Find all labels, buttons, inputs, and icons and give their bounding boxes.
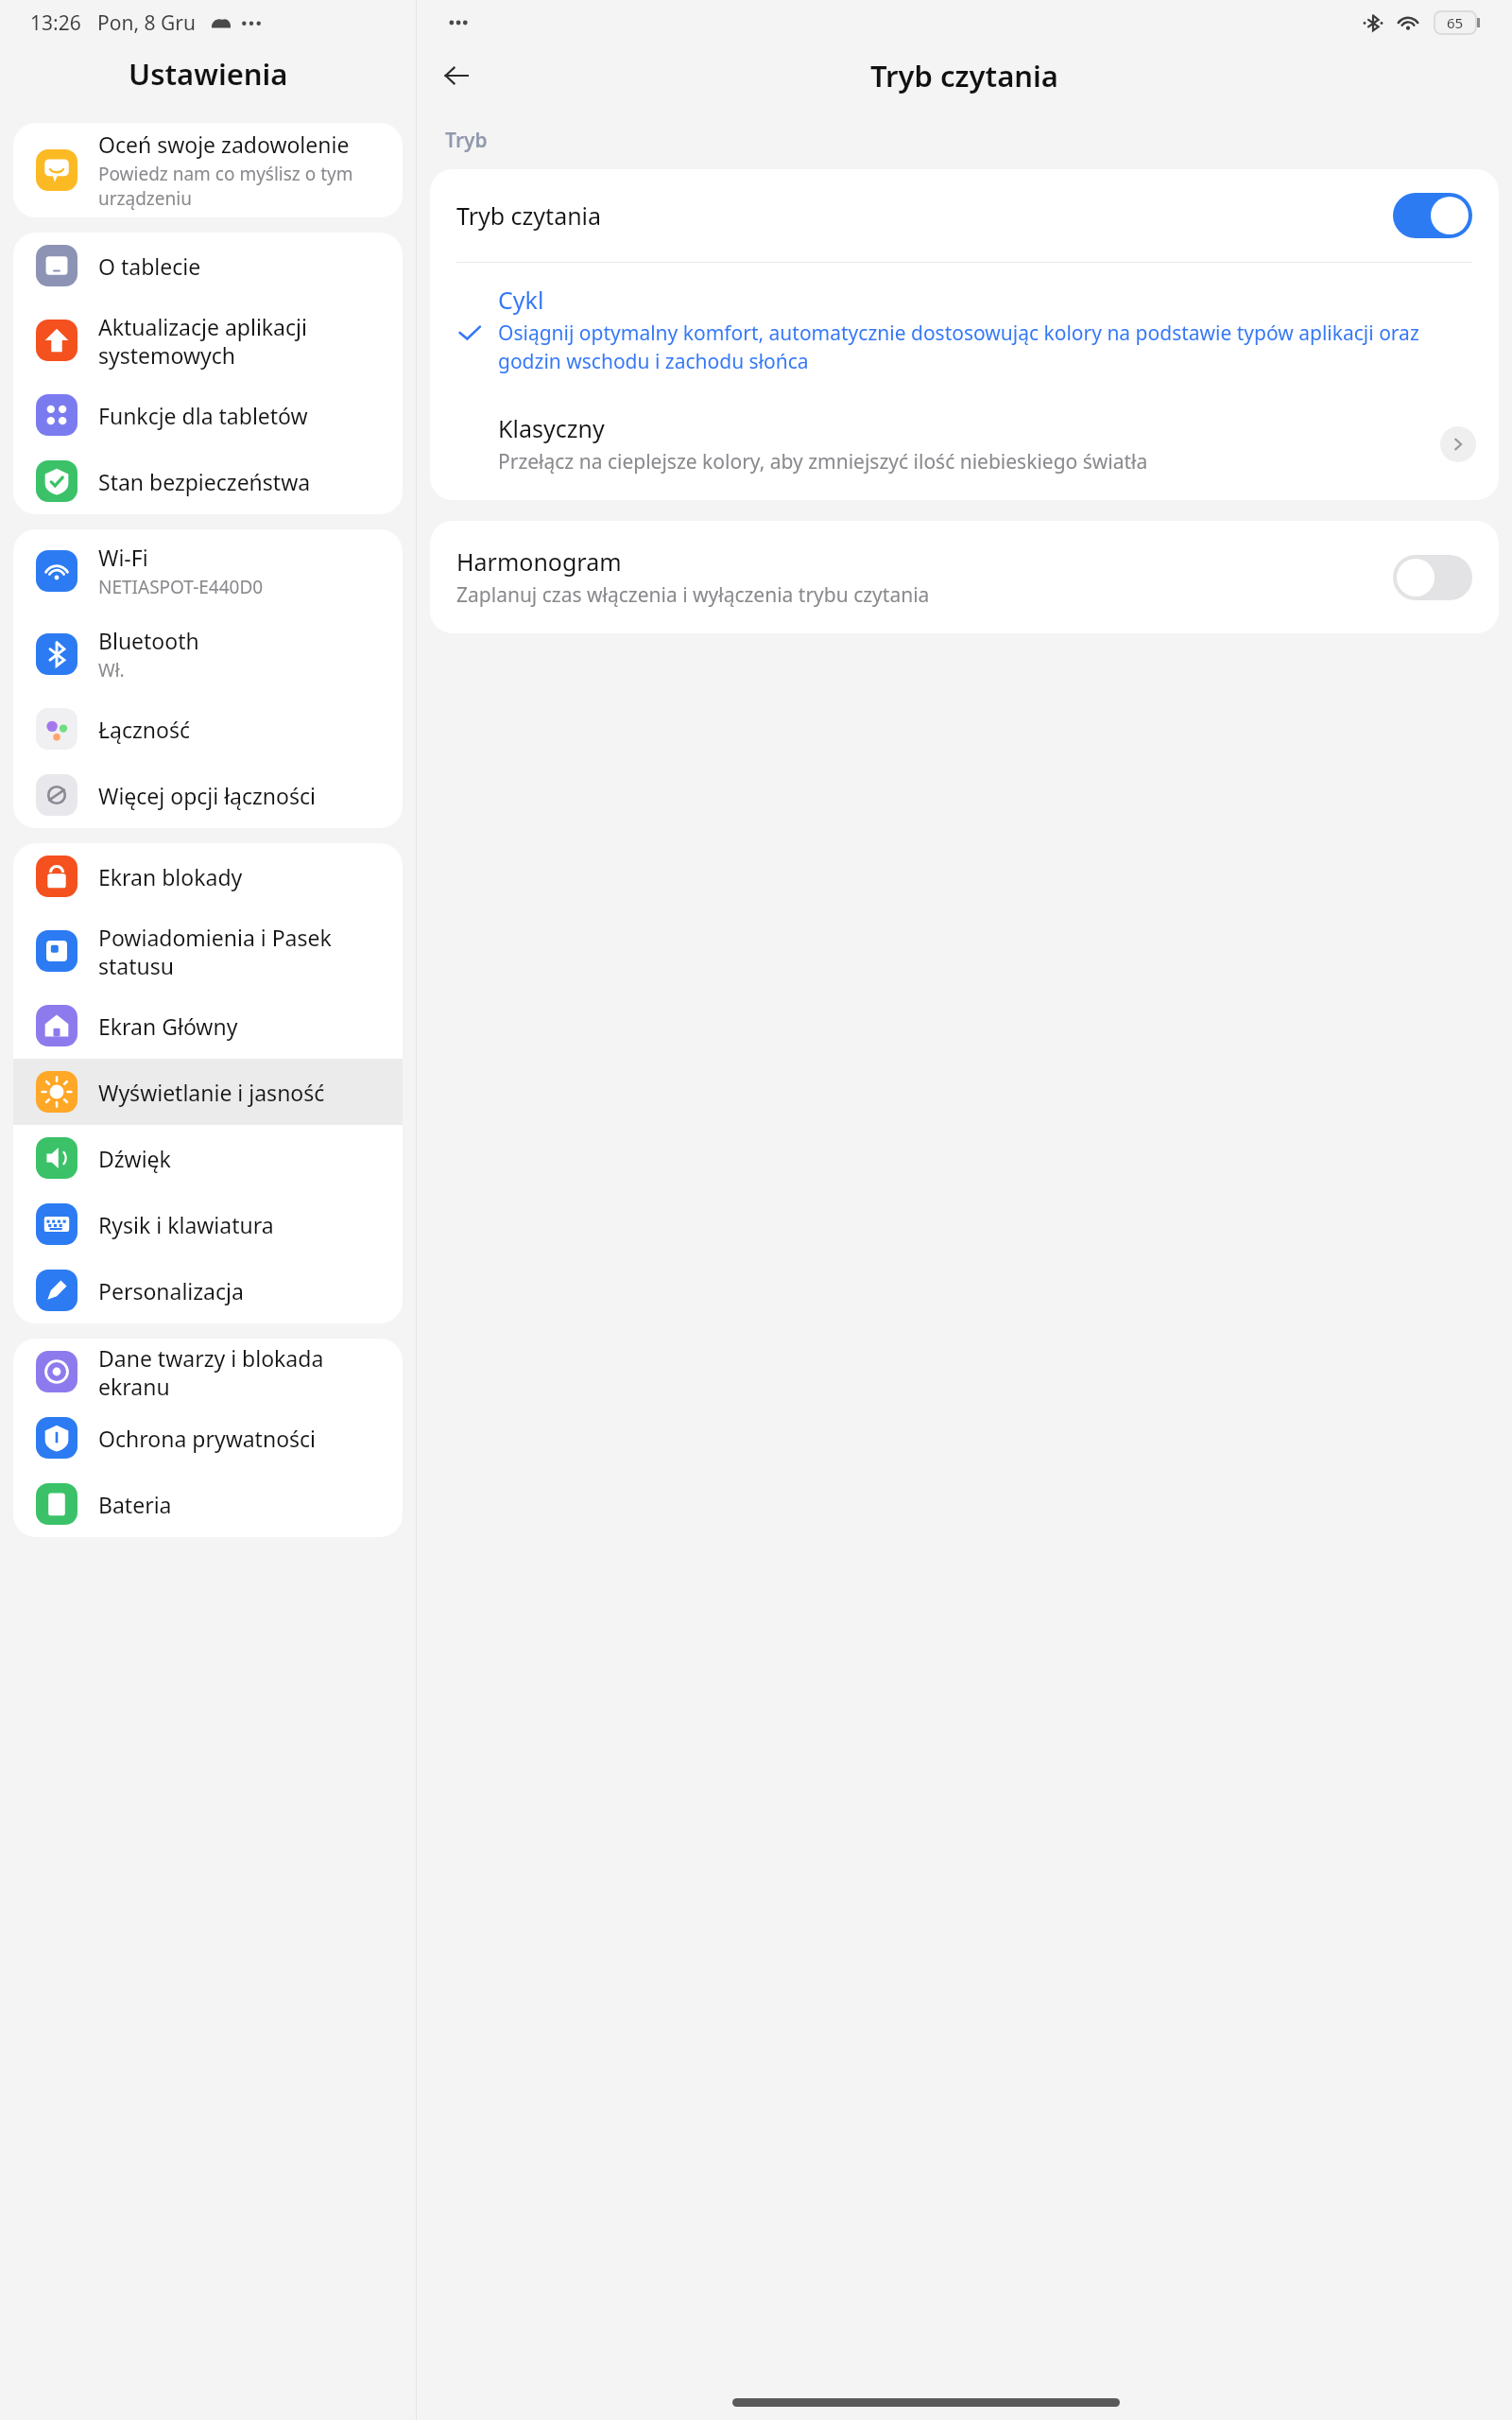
staticText: Tryb czytania — [456, 199, 1393, 232]
button[interactable]: Dźwięk — [13, 1125, 403, 1191]
button[interactable]: Oceń swoje zadowolenie — [13, 123, 403, 217]
staticText: Wyświetlanie i jasność — [98, 1078, 325, 1107]
button[interactable]: Bateria — [13, 1471, 403, 1537]
staticText: Ekran blokady — [98, 862, 243, 891]
staticText: Harmonogram — [456, 545, 622, 578]
staticText: Aktualizacje aplikacji systemowych — [98, 312, 384, 370]
button[interactable]: Stan bezpieczeństwa — [13, 448, 403, 514]
staticText: Stan bezpieczeństwa — [98, 467, 311, 496]
staticText: Ustawienia — [129, 54, 288, 94]
staticText: Cykl — [498, 284, 544, 316]
button[interactable]: Powiadomienia i Pasek statusu — [13, 909, 403, 993]
button[interactable]: Funkcje dla tabletów — [13, 382, 403, 448]
button[interactable]: Rysik i klawiatura — [13, 1191, 403, 1257]
staticText: Przełącz na cieplejsze kolory, aby zmnie… — [498, 448, 1148, 475]
staticText: NETIASPOT-E440D0 — [98, 575, 264, 599]
button[interactable]: Wstecz — [430, 49, 483, 102]
staticText: Ochrona prywatności — [98, 1424, 317, 1453]
button[interactable]: Wi-Fi — [13, 529, 403, 613]
staticText: Wł. — [98, 658, 125, 683]
button[interactable]: Wyłącz — [1393, 193, 1472, 238]
staticText: Personalizacja — [98, 1276, 244, 1305]
button[interactable]: Ochrona prywatności — [13, 1405, 403, 1471]
button[interactable]: Bluetooth — [13, 613, 403, 696]
button[interactable]: Ekran Główny — [13, 993, 403, 1059]
staticText: Oceń swoje zadowolenie — [98, 130, 350, 159]
staticText: Pon, 8 Gru — [97, 9, 196, 37]
staticText: Więcej opcji łączności — [98, 781, 316, 810]
staticText: Powiadomienia i Pasek statusu — [98, 923, 384, 980]
button[interactable]: Cykl — [430, 263, 1499, 395]
staticText: Osiągnij optymalny komfort, automatyczni… — [498, 320, 1472, 374]
button[interactable]: Tryb czytania — [430, 169, 1499, 262]
staticText: Bateria — [98, 1490, 172, 1519]
button[interactable]: Włącz — [1393, 555, 1472, 600]
staticText: Bluetooth — [98, 626, 199, 655]
button[interactable]: O tablecie — [13, 233, 403, 299]
button[interactable]: Wyświetlanie i jasność — [13, 1059, 403, 1125]
staticText: Funkcje dla tabletów — [98, 401, 308, 430]
staticText: Zaplanuj czas włączenia i wyłączenia try… — [456, 581, 930, 609]
button[interactable]: Harmonogram — [430, 521, 1499, 633]
staticText: Dźwięk — [98, 1144, 171, 1173]
staticText: Ekran Główny — [98, 1011, 238, 1041]
button[interactable]: Klasyczny — [430, 395, 1499, 500]
button[interactable]: Personalizacja — [13, 1257, 403, 1323]
button[interactable]: Ekran blokady — [13, 843, 403, 909]
button[interactable]: Więcej opcji łączności — [13, 762, 403, 828]
staticText: Klasyczny — [498, 412, 605, 444]
staticText: Dane twarzy i blokada ekranu — [98, 1343, 384, 1401]
button[interactable]: Dane twarzy i blokada ekranu — [13, 1339, 403, 1405]
staticText: Powiedz nam co myślisz o tym urządzeniu — [98, 162, 384, 211]
button[interactable]: Łączność — [13, 696, 403, 762]
staticText: Łączność — [98, 715, 190, 744]
staticText: Tryb — [445, 127, 488, 154]
staticText: Rysik i klawiatura — [98, 1210, 274, 1239]
button[interactable]: Aktualizacje aplikacji systemowych — [13, 299, 403, 382]
staticText: 13:26 — [30, 9, 81, 37]
staticText: 65 — [1447, 13, 1464, 32]
staticText: Tryb czytania — [870, 56, 1058, 95]
staticText: O tablecie — [98, 251, 201, 281]
staticText: Wi-Fi — [98, 543, 148, 572]
